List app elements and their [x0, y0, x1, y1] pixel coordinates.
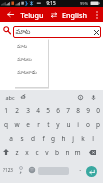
button[interactable]: o: [83, 117, 93, 131]
staticText: a: [9, 134, 13, 143]
button[interactable]: Comma and settings: [15, 159, 26, 180]
staticText: j: [72, 134, 74, 143]
staticText: u: [66, 120, 71, 129]
staticText: 99%: [80, 1, 88, 6]
button[interactable]: More options: [91, 7, 103, 22]
button[interactable]: f: [38, 131, 48, 145]
staticText: ?123: [3, 167, 13, 173]
staticText: 1: [4, 106, 8, 115]
button[interactable]: l: [88, 131, 98, 145]
button[interactable]: English: [60, 7, 89, 22]
button[interactable]: ?123: [1, 159, 14, 180]
button[interactable]: g: [48, 131, 58, 145]
button[interactable]: c: [32, 145, 42, 159]
staticText: o: [86, 120, 90, 129]
button[interactable]: Back: [3, 7, 17, 22]
button[interactable]: q: [0, 117, 11, 131]
staticText: w: [14, 120, 20, 129]
button[interactable]: Swap languages: [48, 7, 59, 22]
staticText: 8: [76, 106, 80, 115]
button[interactable]: Search: [1, 24, 12, 35]
staticText: 5: [46, 106, 50, 115]
button[interactable]: Settings: [75, 90, 86, 104]
button[interactable]: k: [78, 131, 88, 145]
button[interactable]: 7: [63, 104, 73, 117]
staticText: y: [56, 120, 60, 129]
button[interactable]: .: [73, 159, 86, 180]
staticText: Telugu: [20, 10, 44, 20]
button[interactable]: i: [73, 117, 83, 131]
staticText: 7: [66, 106, 70, 115]
staticText: త: [20, 93, 26, 102]
staticText: e: [26, 120, 30, 129]
staticText: k: [81, 134, 85, 143]
button[interactable]: u: [63, 117, 73, 131]
button[interactable]: 8: [73, 104, 83, 117]
staticText: మాటలు: [17, 57, 32, 63]
button[interactable]: Clear: [91, 27, 101, 37]
staticText: t: [47, 120, 50, 129]
button[interactable]: abc: [3, 90, 17, 104]
button[interactable]: 0: [93, 104, 103, 117]
staticText: 9:15: [46, 0, 56, 6]
button[interactable]: మాట: [13, 26, 101, 38]
staticText: i: [77, 120, 79, 129]
staticText: 3: [26, 106, 30, 115]
staticText: d: [31, 134, 35, 143]
staticText: 0: [96, 106, 100, 115]
staticText: z: [15, 148, 19, 157]
button[interactable]: త: [18, 90, 28, 104]
button[interactable]: y: [53, 117, 63, 131]
button[interactable]: x: [22, 145, 32, 159]
button[interactable]: m: [72, 145, 82, 159]
button[interactable]: 4: [33, 104, 43, 117]
button[interactable]: Backspace: [82, 145, 103, 159]
button[interactable]: z: [11, 145, 22, 159]
button[interactable]: మాటలు: [14, 53, 48, 66]
button[interactable]: మాటలాడు: [14, 66, 48, 79]
button[interactable]: Telugu: [18, 7, 46, 22]
staticText: g: [51, 134, 55, 143]
button[interactable]: 9: [83, 104, 93, 117]
button[interactable]: r: [33, 117, 43, 131]
button[interactable]: t: [43, 117, 53, 131]
staticText: q: [4, 120, 8, 129]
button[interactable]: h: [58, 131, 68, 145]
button[interactable]: Voice input: [88, 90, 99, 104]
staticText: .: [79, 164, 81, 173]
staticText: x: [25, 148, 29, 157]
button[interactable]: 2: [11, 104, 22, 117]
staticText: 4: [36, 106, 40, 115]
button[interactable]: w: [11, 117, 22, 131]
button[interactable]: 3: [22, 104, 33, 117]
staticText: 6: [56, 106, 60, 115]
button[interactable]: Change language: [26, 159, 37, 180]
staticText: 9: [86, 106, 90, 115]
staticText: r: [37, 120, 40, 129]
staticText: abc: [5, 94, 15, 101]
button[interactable]: 5: [43, 104, 53, 117]
staticText: s: [20, 134, 24, 143]
staticText: మాటలాడు: [17, 70, 37, 76]
button[interactable]: a: [5, 131, 16, 145]
button[interactable]: v: [42, 145, 52, 159]
staticText: p: [96, 120, 100, 129]
staticText: m: [74, 148, 81, 157]
staticText: మాట: [17, 44, 27, 50]
staticText: h: [61, 134, 66, 143]
button[interactable]: Enter: [86, 166, 97, 177]
button[interactable]: j: [68, 131, 78, 145]
button[interactable]: Shift: [0, 145, 11, 159]
button[interactable]: p: [93, 117, 103, 131]
button[interactable]: e: [22, 117, 33, 131]
button[interactable]: మాట: [14, 40, 48, 53]
button[interactable]: d: [27, 131, 38, 145]
staticText: b: [55, 148, 59, 157]
button[interactable]: 1: [0, 104, 11, 117]
button[interactable]: n: [62, 145, 72, 159]
staticText: 2: [15, 106, 19, 115]
button[interactable]: s: [16, 131, 27, 145]
button[interactable]: 6: [53, 104, 63, 117]
button[interactable]: b: [52, 145, 62, 159]
